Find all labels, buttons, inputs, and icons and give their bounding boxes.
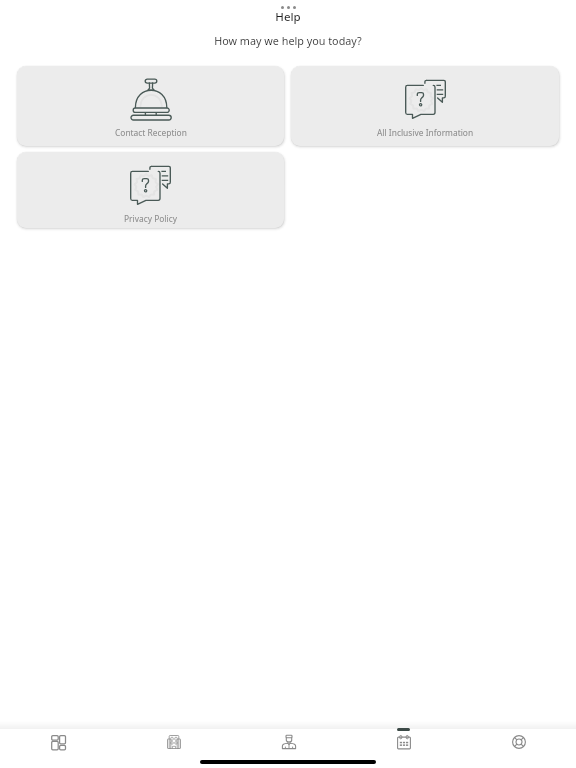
button[interactable]: Privacy Policy bbox=[17, 152, 284, 228]
button[interactable]: Support bbox=[461, 729, 576, 756]
staticText: All Inclusive Information bbox=[377, 127, 474, 138]
button[interactable]: All Inclusive Information bbox=[291, 66, 559, 146]
button[interactable]: Contact Reception bbox=[17, 66, 284, 146]
staticText: Contact Reception bbox=[115, 127, 187, 138]
button[interactable]: Dashboard bbox=[0, 729, 116, 756]
button[interactable]: Calendar bbox=[346, 729, 461, 756]
staticText: Privacy Policy bbox=[124, 213, 177, 224]
staticText: How may we help you today? bbox=[0, 33, 576, 48]
button[interactable]: Hotel bbox=[116, 729, 231, 756]
staticText: Help bbox=[0, 9, 576, 25]
button[interactable]: Concierge bbox=[231, 729, 346, 756]
